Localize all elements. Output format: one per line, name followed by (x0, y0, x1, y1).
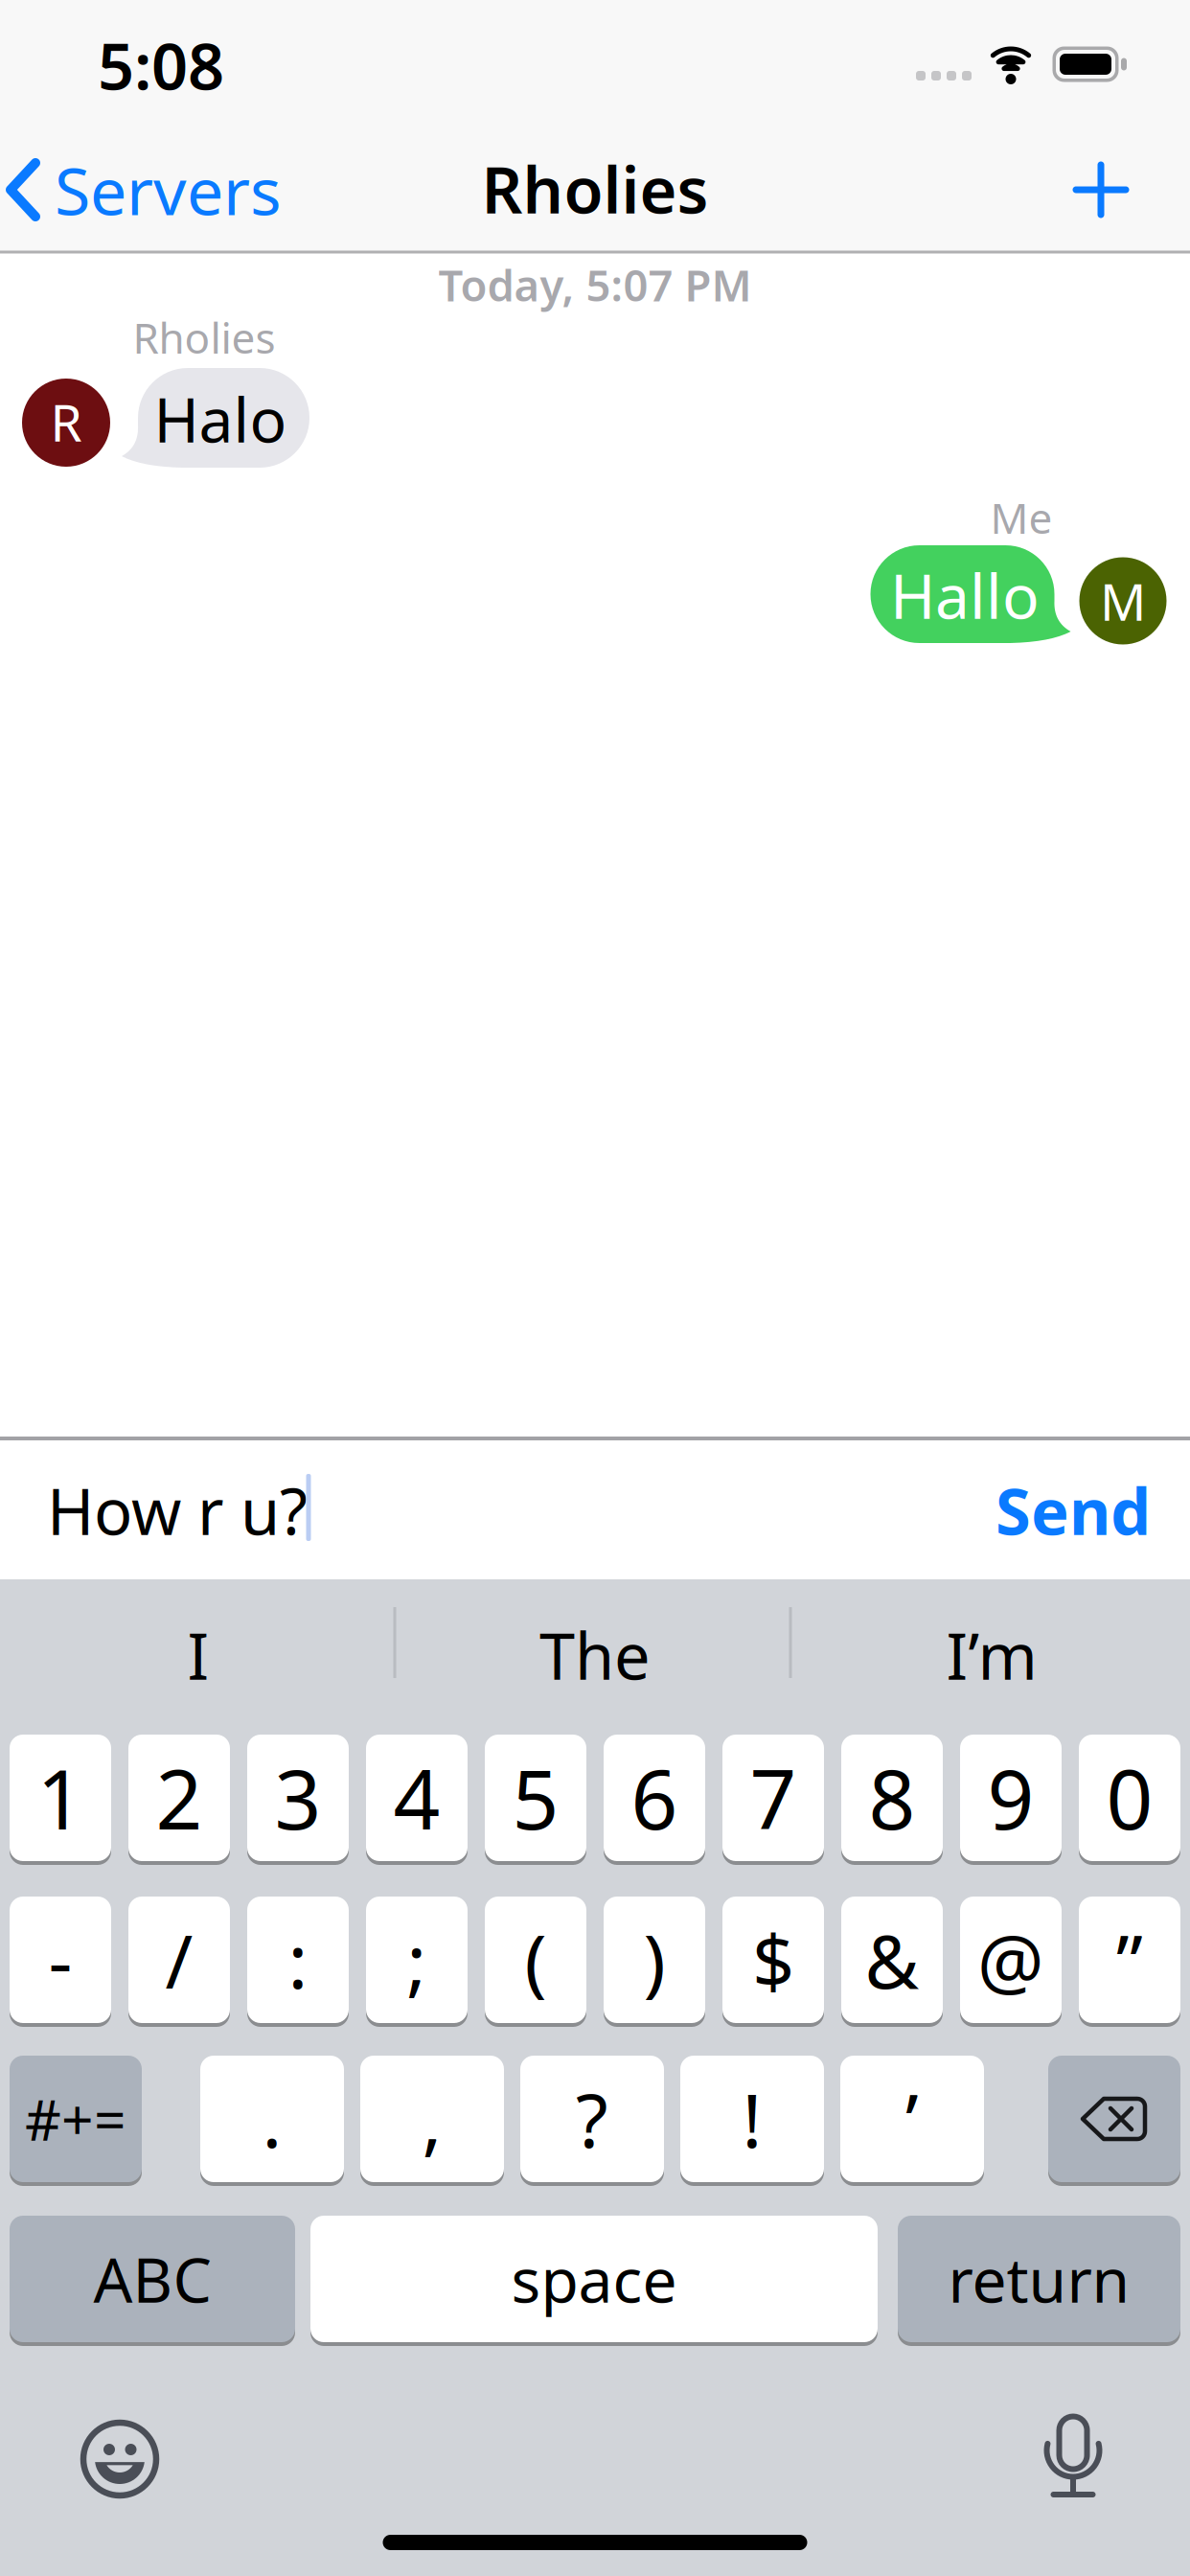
staticText: / (165, 1911, 193, 2009)
staticText: , (422, 2070, 442, 2168)
staticText: ’ (905, 2070, 919, 2168)
staticText: ( (525, 1911, 547, 2009)
staticText: return (948, 2238, 1130, 2320)
button[interactable]: ( (485, 1897, 586, 2023)
button[interactable]: Send (987, 1453, 1159, 1568)
button[interactable]: @ (960, 1897, 1062, 2023)
button[interactable]: Add (1063, 151, 1139, 228)
staticText: @ (977, 1911, 1044, 2009)
button[interactable]: 2 (128, 1735, 230, 1861)
staticText: How r u? (47, 1468, 308, 1553)
button[interactable]: 8 (841, 1735, 943, 1861)
staticText: 6 (631, 1743, 678, 1852)
staticText: Halo (154, 378, 287, 460)
button[interactable]: ” (1079, 1897, 1180, 2023)
button[interactable]: ’ (840, 2056, 984, 2182)
button[interactable]: return (898, 2216, 1180, 2342)
staticText: 2 (156, 1743, 203, 1852)
button[interactable]: 3 (247, 1735, 349, 1861)
button[interactable]: 9 (960, 1735, 1062, 1861)
staticText: ABC (93, 2238, 211, 2320)
button[interactable]: Servers (6, 146, 282, 233)
staticText: ) (643, 1911, 665, 2009)
button[interactable]: , (360, 2056, 504, 2182)
button[interactable]: 1 (10, 1735, 111, 1861)
button[interactable]: 7 (722, 1735, 824, 1861)
button[interactable]: $ (722, 1897, 824, 2023)
button[interactable]: space (310, 2216, 878, 2342)
staticText: ; (407, 1911, 427, 2009)
button[interactable]: ? (520, 2056, 664, 2182)
staticText: Rholies (133, 309, 275, 365)
staticText: : (288, 1911, 308, 2009)
button[interactable]: Emoji (80, 2419, 160, 2499)
staticText: 3 (275, 1743, 321, 1852)
button[interactable]: #+= (10, 2056, 142, 2182)
button[interactable]: & (841, 1897, 943, 2023)
staticText: #+= (25, 2081, 126, 2156)
staticText: I (187, 1613, 209, 1697)
staticText: M (1100, 567, 1146, 635)
button[interactable]: The (403, 1593, 787, 1717)
button[interactable]: ! (680, 2056, 824, 2182)
staticText: Hallo (890, 554, 1040, 636)
staticText: ! (742, 2070, 762, 2168)
button[interactable]: I’m (800, 1593, 1183, 1717)
button[interactable]: 6 (604, 1735, 705, 1861)
staticText: ” (1116, 1911, 1143, 2009)
staticText: R (50, 388, 82, 456)
button[interactable]: Dictation (1044, 2414, 1102, 2500)
staticText: $ (752, 1911, 794, 2009)
staticText: space (511, 2238, 677, 2320)
button[interactable]: / (128, 1897, 230, 2023)
staticText: ? (576, 2070, 608, 2168)
staticText: 5:08 (98, 23, 224, 108)
staticText: & (865, 1911, 919, 2009)
staticText: The (539, 1613, 651, 1697)
button[interactable]: . (200, 2056, 344, 2182)
staticText: Servers (55, 146, 282, 233)
button[interactable]: 5 (485, 1735, 586, 1861)
staticText: 7 (750, 1743, 797, 1852)
button[interactable]: 4 (366, 1735, 468, 1861)
staticText: 9 (987, 1743, 1034, 1852)
button[interactable]: ) (604, 1897, 705, 2023)
staticText: 8 (869, 1743, 915, 1852)
staticText: Send (995, 1468, 1151, 1553)
button[interactable]: - (10, 1897, 111, 2023)
staticText: I’m (946, 1613, 1037, 1697)
staticText: 1 (37, 1743, 84, 1852)
button[interactable]: 0 (1079, 1735, 1180, 1861)
button[interactable]: I (7, 1593, 390, 1717)
staticText: Today, 5:07 PM (438, 256, 752, 313)
button[interactable]: ABC (10, 2216, 295, 2342)
button[interactable]: ; (366, 1897, 468, 2023)
staticText: 5 (512, 1743, 559, 1852)
staticText: Rholies (481, 146, 709, 231)
staticText: 4 (393, 1743, 440, 1852)
staticText: 0 (1106, 1743, 1153, 1852)
button[interactable]: : (247, 1897, 349, 2023)
button[interactable]: Delete (1048, 2056, 1180, 2182)
staticText: - (48, 1911, 72, 2009)
staticText: Me (990, 490, 1053, 545)
staticText: . (262, 2070, 282, 2168)
